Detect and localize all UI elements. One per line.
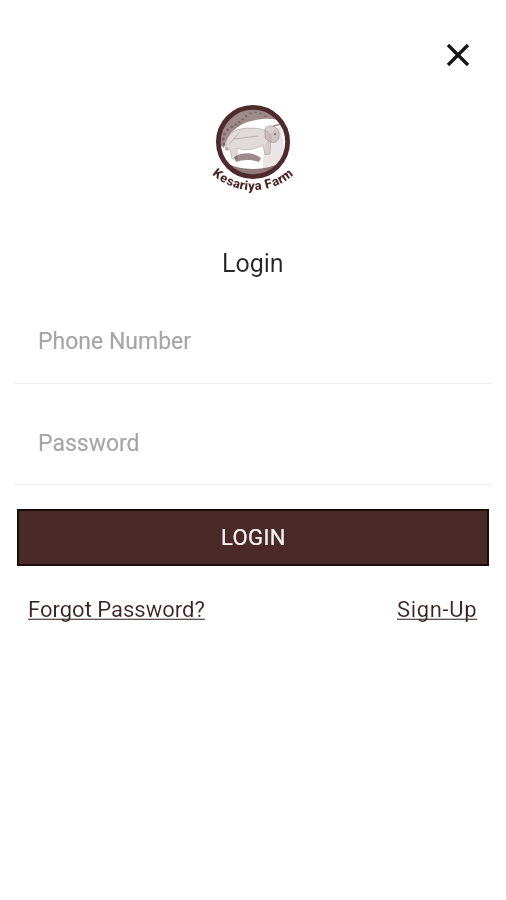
button[interactable]: Forgot Password? — [28, 589, 205, 631]
staticText: Phone Number — [38, 328, 192, 355]
staticText: Sign-Up — [397, 597, 478, 623]
staticText: Login — [222, 249, 284, 278]
staticText: LOGIN — [221, 525, 286, 551]
button[interactable]: Sign-Up — [397, 589, 478, 631]
staticText: Password — [38, 430, 140, 457]
staticText: Forgot Password? — [28, 597, 205, 623]
button[interactable]: Phone Number — [14, 310, 492, 384]
button[interactable]: Close — [434, 31, 482, 79]
button[interactable]: LOGIN — [19, 511, 487, 564]
button[interactable]: Password — [14, 412, 492, 485]
